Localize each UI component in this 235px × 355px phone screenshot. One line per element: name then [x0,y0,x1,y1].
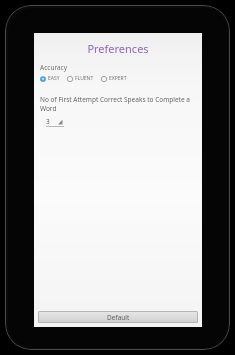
staticText: No of First Attempt Correct Speaks to Co… [40,95,202,113]
button[interactable]: Default [38,311,198,323]
button[interactable]: EXPERT [101,75,127,82]
staticText: FLUENT [75,75,94,82]
staticText: 3 [46,117,50,126]
staticText: Default [107,313,130,322]
button[interactable]: EASY [40,75,60,82]
staticText: EASY [48,75,60,82]
button[interactable]: FLUENT [67,75,94,82]
staticText: EXPERT [109,75,127,82]
button[interactable]: Select number of speaks [46,117,64,128]
staticText: Accuracy [40,63,68,72]
staticText: Preferences [34,41,202,56]
